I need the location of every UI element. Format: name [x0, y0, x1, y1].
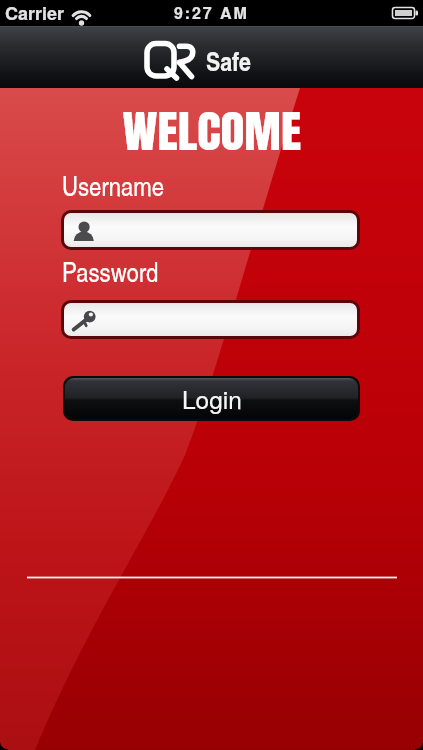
button[interactable]: Login: [65, 378, 358, 419]
staticText: Password: [62, 253, 159, 290]
button[interactable]: [64, 213, 357, 247]
staticText: Login: [182, 381, 242, 416]
staticText: 9:27 AM: [174, 1, 249, 24]
staticText: Carrier: [5, 0, 65, 26]
button[interactable]: [64, 303, 357, 336]
staticText: Safe: [206, 42, 251, 79]
staticText: Username: [62, 167, 165, 204]
staticText: WELCOME: [123, 97, 301, 165]
